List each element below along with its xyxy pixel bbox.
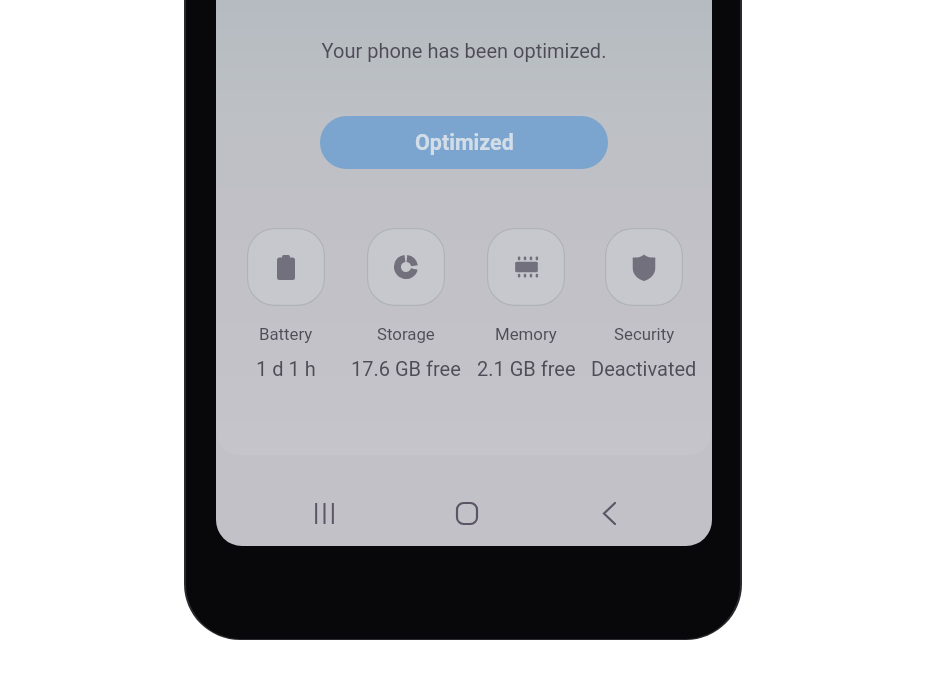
- staticText: Optimized: [415, 130, 514, 155]
- staticText: 2.1 GB free: [477, 357, 576, 380]
- button[interactable]: Storage: [346, 228, 466, 380]
- staticText: 17.6 GB free: [351, 357, 461, 380]
- staticText: Security: [614, 324, 675, 344]
- button[interactable]: Home: [431, 489, 503, 537]
- button[interactable]: Memory: [466, 228, 586, 380]
- staticText: Battery: [259, 324, 313, 344]
- staticText: Your phone has been optimized.: [216, 39, 712, 62]
- staticText: Memory: [495, 324, 557, 344]
- staticText: Deactivated: [591, 357, 697, 380]
- staticText: Storage: [377, 324, 435, 344]
- button[interactable]: Back: [573, 489, 645, 537]
- button[interactable]: Recent apps: [288, 489, 360, 537]
- button[interactable]: Security: [586, 228, 702, 380]
- button[interactable]: Optimized: [320, 116, 608, 169]
- button[interactable]: Battery: [226, 228, 346, 380]
- staticText: 1 d 1 h: [256, 357, 316, 380]
